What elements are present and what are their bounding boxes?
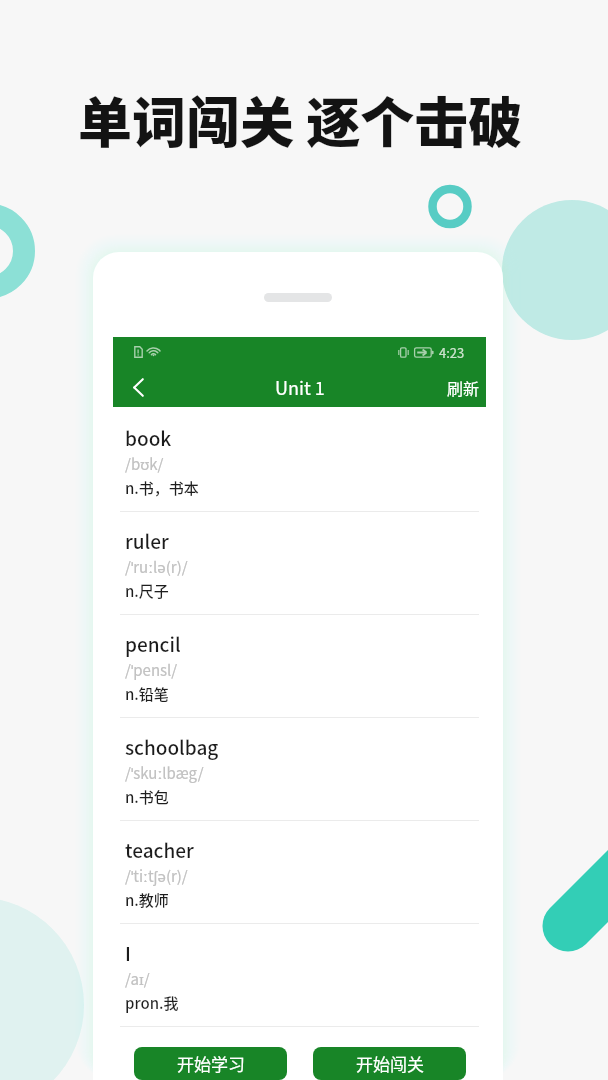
button[interactable]: schoolbag — [113, 718, 486, 821]
button[interactable]: teacher — [113, 821, 486, 924]
staticText: Unit 1 — [275, 374, 325, 400]
staticText: schoolbag — [125, 733, 219, 761]
staticText: ruler — [125, 527, 169, 555]
staticText: teacher — [125, 836, 194, 864]
staticText: n.铅笔 — [125, 683, 169, 705]
staticText: I — [125, 939, 131, 967]
staticText: pencil — [125, 630, 181, 658]
button[interactable]: Back — [113, 367, 163, 407]
staticText: 刷新 — [447, 376, 480, 399]
staticText: 单词闯关 逐个击破 — [78, 80, 523, 158]
staticText: /ˈtiːtʃə(r)/ — [125, 865, 188, 887]
staticText: n.尺子 — [125, 580, 169, 602]
button[interactable]: book — [113, 409, 486, 512]
button[interactable]: 开始学习 — [134, 1047, 287, 1080]
staticText: /bʊk/ — [125, 453, 164, 475]
button[interactable]: 开始闯关 — [313, 1047, 466, 1080]
staticText: 开始学习 — [177, 1051, 245, 1076]
staticText: 开始闯关 — [356, 1051, 424, 1076]
button[interactable]: 刷新 — [437, 367, 486, 407]
staticText: pron.我 — [125, 992, 179, 1014]
staticText: /ˈpensl/ — [125, 659, 178, 681]
staticText: 4:23 — [439, 343, 465, 362]
staticText: /ˈskuːlbæg/ — [125, 762, 204, 784]
staticText: n.书包 — [125, 786, 169, 808]
staticText: n.教师 — [125, 889, 169, 911]
button[interactable]: ruler — [113, 512, 486, 615]
button[interactable]: pencil — [113, 615, 486, 718]
button[interactable]: I — [113, 924, 486, 1027]
staticText: /aɪ/ — [125, 968, 150, 990]
staticText: n.书，书本 — [125, 477, 199, 499]
staticText: book — [125, 424, 172, 452]
staticText: /ˈruːlə(r)/ — [125, 556, 188, 578]
